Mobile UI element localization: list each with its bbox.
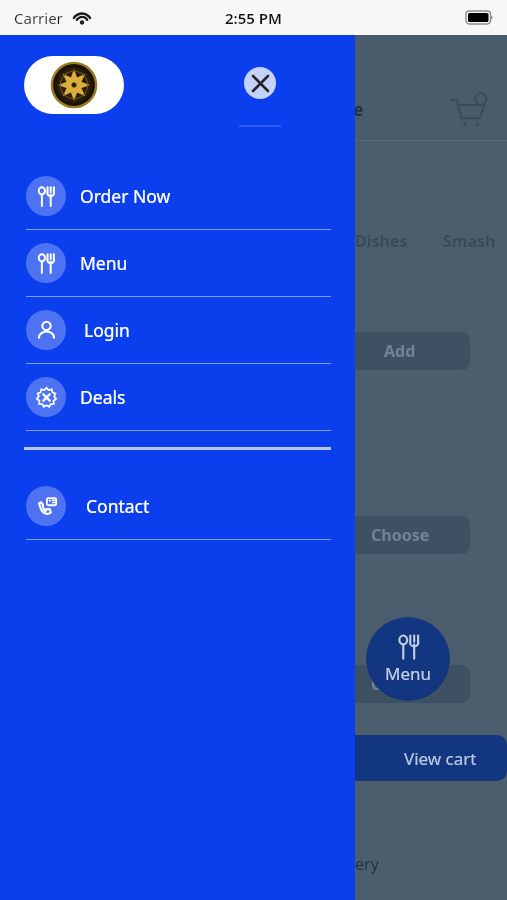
staticText: 2:55 PM [225,8,282,28]
staticText: Choose [371,524,430,546]
button[interactable]: Order Now [0,163,355,229]
staticText: Menu [80,251,128,275]
staticText: Dishes [355,230,408,252]
staticText: Login [84,318,130,342]
button[interactable]: Choose [330,516,470,554]
button[interactable]: Contact [0,473,355,539]
button[interactable]: Logo [24,56,124,114]
staticText: Deals [80,385,126,409]
staticText: Add [384,340,416,362]
button[interactable]: Deals [0,364,355,430]
staticText: Taste the experience [188,98,364,121]
staticText: Contact [86,494,150,518]
button[interactable]: Choose [330,665,470,703]
button[interactable]: Close menu [244,67,276,99]
button[interactable]: Add [330,332,470,370]
button[interactable]: Login [0,297,355,363]
button[interactable]: Menu [0,230,355,296]
button[interactable]: View cart [330,735,507,781]
staticText: Smash [443,230,496,252]
staticText: Menu [385,662,432,685]
button[interactable]: Menu [366,617,450,701]
staticText: Order Now [80,184,171,208]
button[interactable]: Cart [448,91,488,131]
staticText: Carrier [14,8,63,28]
staticText: View cart [404,747,477,770]
staticText: Delivery [318,853,379,875]
staticText: Choose [371,673,430,695]
